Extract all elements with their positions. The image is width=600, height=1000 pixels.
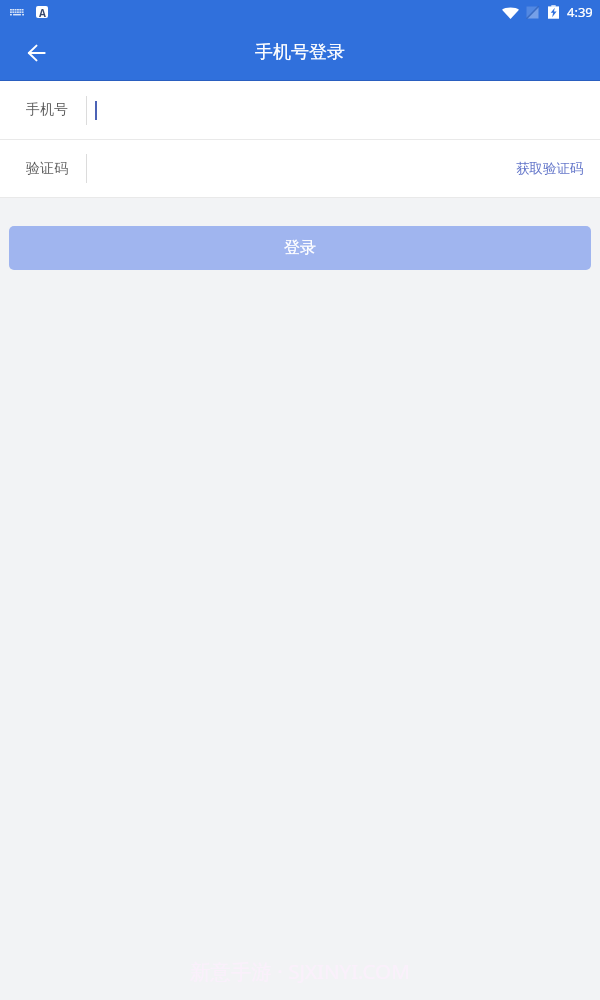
button[interactable]: 手机号 [0,81,600,139]
staticText: 登录 [284,238,316,258]
button[interactable]: 获取验证码 [498,144,600,193]
button[interactable]: 登录 [9,226,591,270]
staticText: 手机号 [26,101,68,119]
staticText: A [39,6,46,18]
staticText: 验证码 [26,160,68,178]
button[interactable]: Back [16,33,56,73]
staticText: 4:39 [567,3,593,21]
staticText: 获取验证码 [516,160,584,177]
staticText: 手机号登录 [255,41,345,64]
